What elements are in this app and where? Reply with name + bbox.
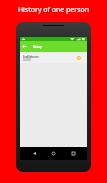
button[interactable]: Navigate up bbox=[20, 41, 29, 52]
button[interactable]: Back bbox=[29, 148, 40, 159]
button[interactable]: Recent apps bbox=[68, 148, 79, 159]
staticText: Good Behaviour bbox=[23, 54, 39, 59]
staticText: 26.4.2018 bbox=[23, 57, 31, 62]
button[interactable]: Good Behaviour bbox=[20, 52, 87, 63]
staticText: History bbox=[33, 44, 42, 49]
button[interactable]: Home bbox=[48, 148, 59, 159]
staticText: History of one person bbox=[0, 5, 107, 15]
